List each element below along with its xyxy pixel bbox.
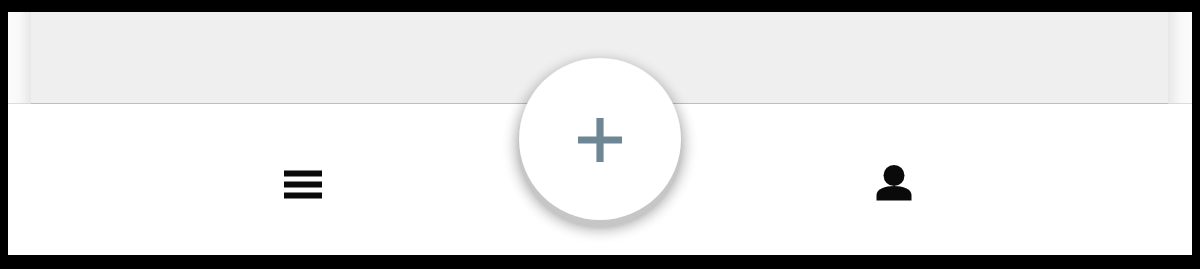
button[interactable]: Add xyxy=(519,58,681,220)
button[interactable]: Profile xyxy=(856,146,932,222)
button[interactable]: Menu xyxy=(265,146,341,222)
